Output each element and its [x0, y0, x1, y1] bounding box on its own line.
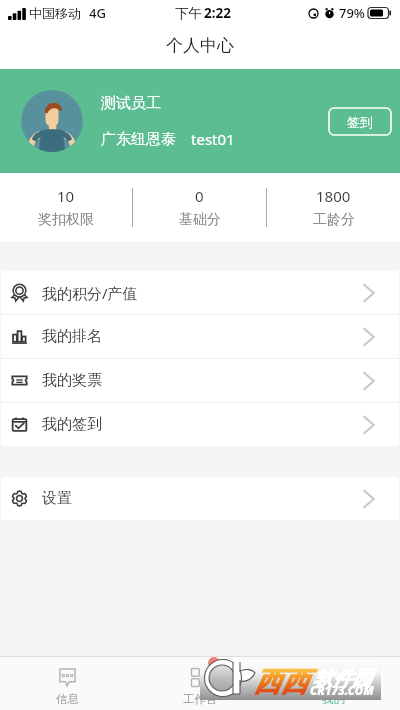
staticText: 下午: [175, 5, 202, 22]
staticText: 设置: [42, 489, 72, 508]
staticText: test01: [191, 129, 235, 149]
staticText: 我的积分/产值: [42, 283, 138, 303]
staticText: 奖扣权限: [38, 211, 94, 229]
button[interactable]: 我的奖票: [1, 359, 399, 402]
staticText: 我的奖票: [42, 371, 102, 390]
button[interactable]: 我的签到: [1, 403, 399, 446]
staticText: 签到: [347, 114, 373, 130]
staticText: CR173.COM: [310, 683, 374, 699]
staticText: 广东纽恩泰: [101, 130, 176, 149]
staticText: 工龄分: [313, 211, 355, 229]
staticText: 我的签到: [42, 415, 102, 434]
staticText: 软件园: [313, 666, 372, 691]
button[interactable]: 0: [133, 186, 266, 229]
staticText: 信息: [56, 692, 79, 706]
staticText: 工作台: [183, 692, 218, 706]
staticText: 10: [57, 186, 75, 206]
staticText: 个人中心: [166, 35, 234, 56]
staticText: 中国移动: [29, 5, 81, 21]
staticText: 4G: [89, 4, 106, 22]
staticText: 0: [195, 186, 204, 206]
button[interactable]: 我的: [267, 657, 400, 710]
staticText: 2:22: [204, 4, 231, 22]
button[interactable]: 设置: [1, 477, 399, 520]
button[interactable]: 10: [0, 186, 132, 229]
staticText: 我的: [322, 692, 345, 706]
staticText: 测试员工: [101, 94, 161, 113]
staticText: 西西: [254, 665, 308, 699]
button[interactable]: 签到: [328, 107, 392, 136]
button[interactable]: 1800: [267, 186, 400, 229]
staticText: 基础分: [179, 211, 221, 229]
button[interactable]: 我的排名: [1, 315, 399, 358]
staticText: 1800: [316, 186, 351, 206]
staticText: 79%: [339, 4, 365, 22]
staticText: 我的排名: [42, 327, 102, 346]
button[interactable]: 信息: [0, 657, 134, 710]
button[interactable]: 我的积分/产值: [1, 271, 399, 314]
button[interactable]: 工作台: [134, 657, 267, 710]
